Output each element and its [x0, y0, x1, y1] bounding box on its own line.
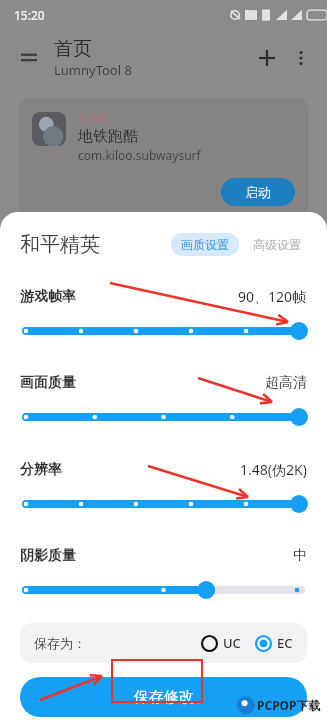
button[interactable]: UC [201, 634, 241, 652]
staticText: 中 [293, 547, 307, 565]
staticText: 阴影质量 [20, 547, 76, 565]
button[interactable]: Menu [10, 39, 48, 77]
staticText: 启动 [245, 184, 271, 200]
staticText: PCPOP下载 [257, 697, 321, 713]
staticText: 游戏帧率 [20, 288, 76, 306]
button[interactable]: Add [249, 40, 285, 76]
staticText: 保存为： [34, 635, 86, 651]
staticText: 和平精英 [20, 232, 100, 257]
button[interactable]: More options [285, 42, 317, 74]
button[interactable]: 高级设置 [247, 233, 307, 256]
staticText: 15:20 [14, 7, 45, 23]
button[interactable]: 启动 [221, 178, 295, 206]
button[interactable] [20, 406, 307, 428]
button[interactable]: 未适配 [18, 98, 309, 216]
staticText: EC [277, 634, 293, 652]
staticText: 首页 [54, 37, 92, 61]
button[interactable]: 画质设置 [171, 233, 239, 256]
button[interactable] [20, 579, 307, 601]
button[interactable]: 保存为： [20, 623, 307, 663]
staticText: 未适配 [78, 112, 108, 125]
staticText: 高级设置 [253, 237, 301, 252]
staticText: 地铁跑酷 [78, 127, 138, 146]
staticText: 画质设置 [181, 237, 229, 252]
staticText: 画面质量 [20, 374, 76, 392]
button[interactable]: 保存修改 [20, 677, 307, 717]
staticText: 90、120帧 [238, 287, 307, 306]
button[interactable]: EC [255, 634, 293, 652]
staticText: LumnyTool 8 [54, 61, 132, 79]
button[interactable] [20, 320, 307, 342]
staticText: 1.48(伪2K) [240, 460, 307, 479]
button[interactable] [20, 493, 307, 515]
staticText: com.kiloo.subwaysurf [78, 147, 201, 163]
staticText: 超高清 [265, 374, 307, 392]
staticText: UC [223, 634, 241, 652]
staticText: 分辨率 [20, 461, 62, 479]
staticText: 保存修改 [134, 688, 194, 707]
